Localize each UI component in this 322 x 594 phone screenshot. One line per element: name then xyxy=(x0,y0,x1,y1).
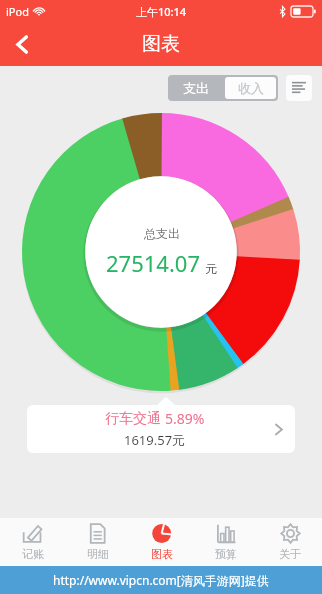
staticText: 总支出 xyxy=(144,226,180,241)
staticText: iPod xyxy=(6,4,29,19)
button[interactable]: 支出 xyxy=(168,75,223,101)
staticText: 明细 xyxy=(87,547,109,561)
staticText: 图表 xyxy=(142,32,180,56)
button[interactable]: 明细 xyxy=(65,518,130,566)
staticText: 图表 xyxy=(151,547,173,561)
staticText: 行车交通 xyxy=(105,410,161,428)
staticText: 预算 xyxy=(215,547,237,561)
staticText: 记账 xyxy=(22,547,44,561)
button[interactable]: Back xyxy=(0,22,44,66)
button[interactable]: 预算 xyxy=(194,518,258,566)
button[interactable]: 记账 xyxy=(0,518,65,566)
staticText: 上午10:14 xyxy=(136,4,187,19)
staticText: http://www.vipcn.com[清风手游网]提供 xyxy=(53,572,269,588)
staticText: 收入 xyxy=(238,80,264,96)
staticText: 1619.57元 xyxy=(124,431,186,449)
button[interactable]: 行车交通 xyxy=(27,405,295,453)
staticText: 5.89% xyxy=(165,409,205,428)
button[interactable]: 关于 xyxy=(258,518,322,566)
button[interactable]: List view xyxy=(286,75,312,101)
staticText: 27514.07 xyxy=(106,248,200,278)
staticText: 关于 xyxy=(279,547,301,561)
staticText: 支出 xyxy=(183,80,209,96)
staticText: 元 xyxy=(205,261,217,276)
button[interactable]: 图表 xyxy=(130,518,194,566)
button[interactable]: 收入 xyxy=(225,77,276,99)
